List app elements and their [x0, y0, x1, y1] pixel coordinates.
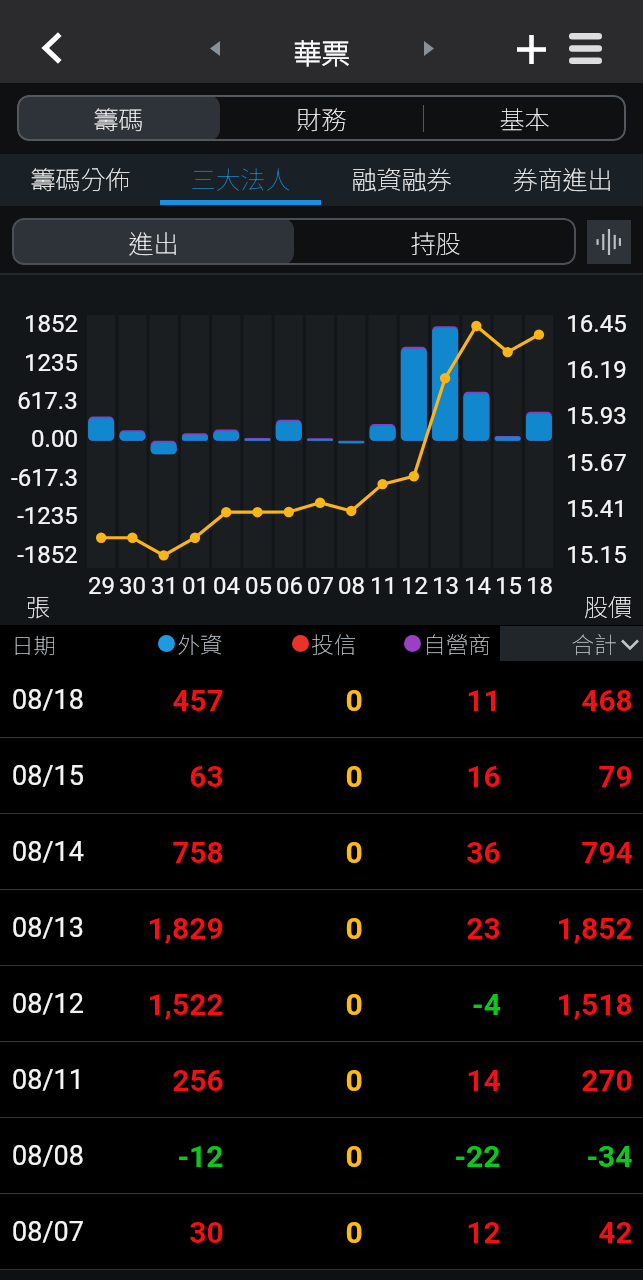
staticText: 08/18 [12, 684, 84, 716]
staticText: 融資融券 [351, 160, 452, 196]
button[interactable]: 08/14 [0, 814, 643, 890]
button[interactable]: 持股 [294, 218, 576, 265]
button[interactable]: Back [28, 24, 76, 72]
button[interactable]: 財務 [220, 95, 423, 141]
staticText: 0 [345, 1063, 363, 1098]
staticText: 張 [26, 588, 50, 623]
staticText: 06 [276, 572, 303, 600]
button[interactable]: 08/13 [0, 890, 643, 966]
staticText: 16.45 [566, 310, 627, 338]
staticText: 08/07 [12, 1216, 84, 1248]
staticText: 23 [466, 911, 501, 946]
staticText: 15.67 [566, 449, 627, 477]
button[interactable]: 進出 [12, 218, 294, 265]
staticText: 15.15 [566, 541, 627, 569]
staticText: 29 [88, 572, 115, 600]
staticText: 08/15 [12, 760, 84, 792]
staticText: 1,518 [556, 987, 633, 1022]
button[interactable]: 三大法人 [160, 154, 321, 206]
staticText: 券商進出 [512, 160, 613, 196]
button[interactable]: 08/07 [0, 1194, 643, 1270]
staticText: 14 [464, 572, 491, 600]
staticText: 16.19 [566, 356, 627, 384]
button[interactable]: 08/08 [0, 1118, 643, 1194]
staticText: 12 [401, 572, 428, 600]
button[interactable]: Chart settings [587, 220, 631, 264]
staticText: 256 [172, 1063, 224, 1098]
staticText: 11 [466, 683, 501, 718]
staticText: -1235 [17, 502, 78, 530]
staticText: 05 [245, 572, 272, 600]
staticText: 12 [466, 1215, 501, 1250]
staticText: 進出 [128, 224, 179, 260]
staticText: 1235 [24, 349, 78, 377]
button[interactable]: 基本 [423, 95, 626, 141]
staticText: 0 [345, 1139, 363, 1174]
staticText: -4 [472, 987, 501, 1022]
staticText: 08/12 [12, 988, 84, 1020]
staticText: 617.3 [17, 387, 78, 415]
staticText: 日期 [11, 628, 56, 660]
staticText: -1852 [17, 541, 78, 569]
staticText: 基本 [499, 100, 550, 136]
staticText: 自營商 [423, 627, 491, 660]
staticText: 0 [345, 911, 363, 946]
staticText: -617.3 [11, 464, 78, 492]
staticText: 0.00 [31, 425, 78, 453]
staticText: 15.93 [566, 402, 627, 430]
button[interactable]: Add [507, 25, 555, 73]
staticText: 三大法人 [190, 160, 291, 196]
staticText: 14 [466, 1063, 501, 1098]
staticText: 華票 [293, 32, 350, 73]
staticText: 07 [307, 572, 334, 600]
staticText: 08/14 [12, 836, 84, 868]
staticText: -34 [586, 1139, 633, 1174]
staticText: 457 [172, 683, 224, 718]
staticText: 42 [598, 1215, 633, 1250]
staticText: 13 [432, 572, 459, 600]
button[interactable]: 籌碼分佈 [0, 154, 160, 206]
staticText: 1852 [24, 310, 78, 338]
staticText: 籌碼分佈 [30, 160, 131, 196]
staticText: 31 [151, 572, 178, 600]
staticText: 08 [338, 572, 365, 600]
staticText: 08/13 [12, 912, 84, 944]
staticText: 合計 [571, 627, 617, 660]
button[interactable]: 融資融券 [321, 154, 482, 206]
staticText: 04 [213, 572, 240, 600]
button[interactable]: 08/12 [0, 966, 643, 1042]
staticText: 16 [466, 759, 501, 794]
staticText: 0 [345, 759, 363, 794]
staticText: 794 [581, 835, 633, 870]
staticText: 投信 [311, 627, 357, 660]
button[interactable]: 券商進出 [482, 154, 643, 206]
staticText: 08/11 [12, 1064, 84, 1096]
staticText: 籌碼 [93, 100, 144, 136]
button[interactable]: 08/11 [0, 1042, 643, 1118]
staticText: 79 [598, 759, 633, 794]
staticText: 15 [495, 572, 522, 600]
staticText: 30 [119, 572, 146, 600]
staticText: 15.41 [566, 495, 627, 523]
staticText: 63 [189, 759, 224, 794]
button[interactable]: 08/18 [0, 662, 643, 738]
staticText: 18 [526, 572, 553, 600]
staticText: 758 [172, 835, 224, 870]
staticText: 468 [581, 683, 633, 718]
button[interactable]: Next [409, 28, 449, 68]
button[interactable]: 08/15 [0, 738, 643, 814]
button[interactable]: 籌碼 [17, 95, 220, 141]
staticText: 1,522 [147, 987, 224, 1022]
staticText: 30 [189, 1215, 224, 1250]
staticText: -22 [454, 1139, 501, 1174]
staticText: 11 [370, 572, 397, 600]
staticText: 0 [345, 835, 363, 870]
staticText: 1,852 [556, 911, 633, 946]
staticText: 0 [345, 1215, 363, 1250]
button[interactable]: Menu [561, 24, 609, 72]
staticText: 08/08 [12, 1140, 84, 1172]
staticText: 1,829 [147, 911, 224, 946]
button[interactable]: Previous [195, 28, 235, 68]
staticText: -12 [177, 1139, 224, 1174]
staticText: 0 [345, 987, 363, 1022]
